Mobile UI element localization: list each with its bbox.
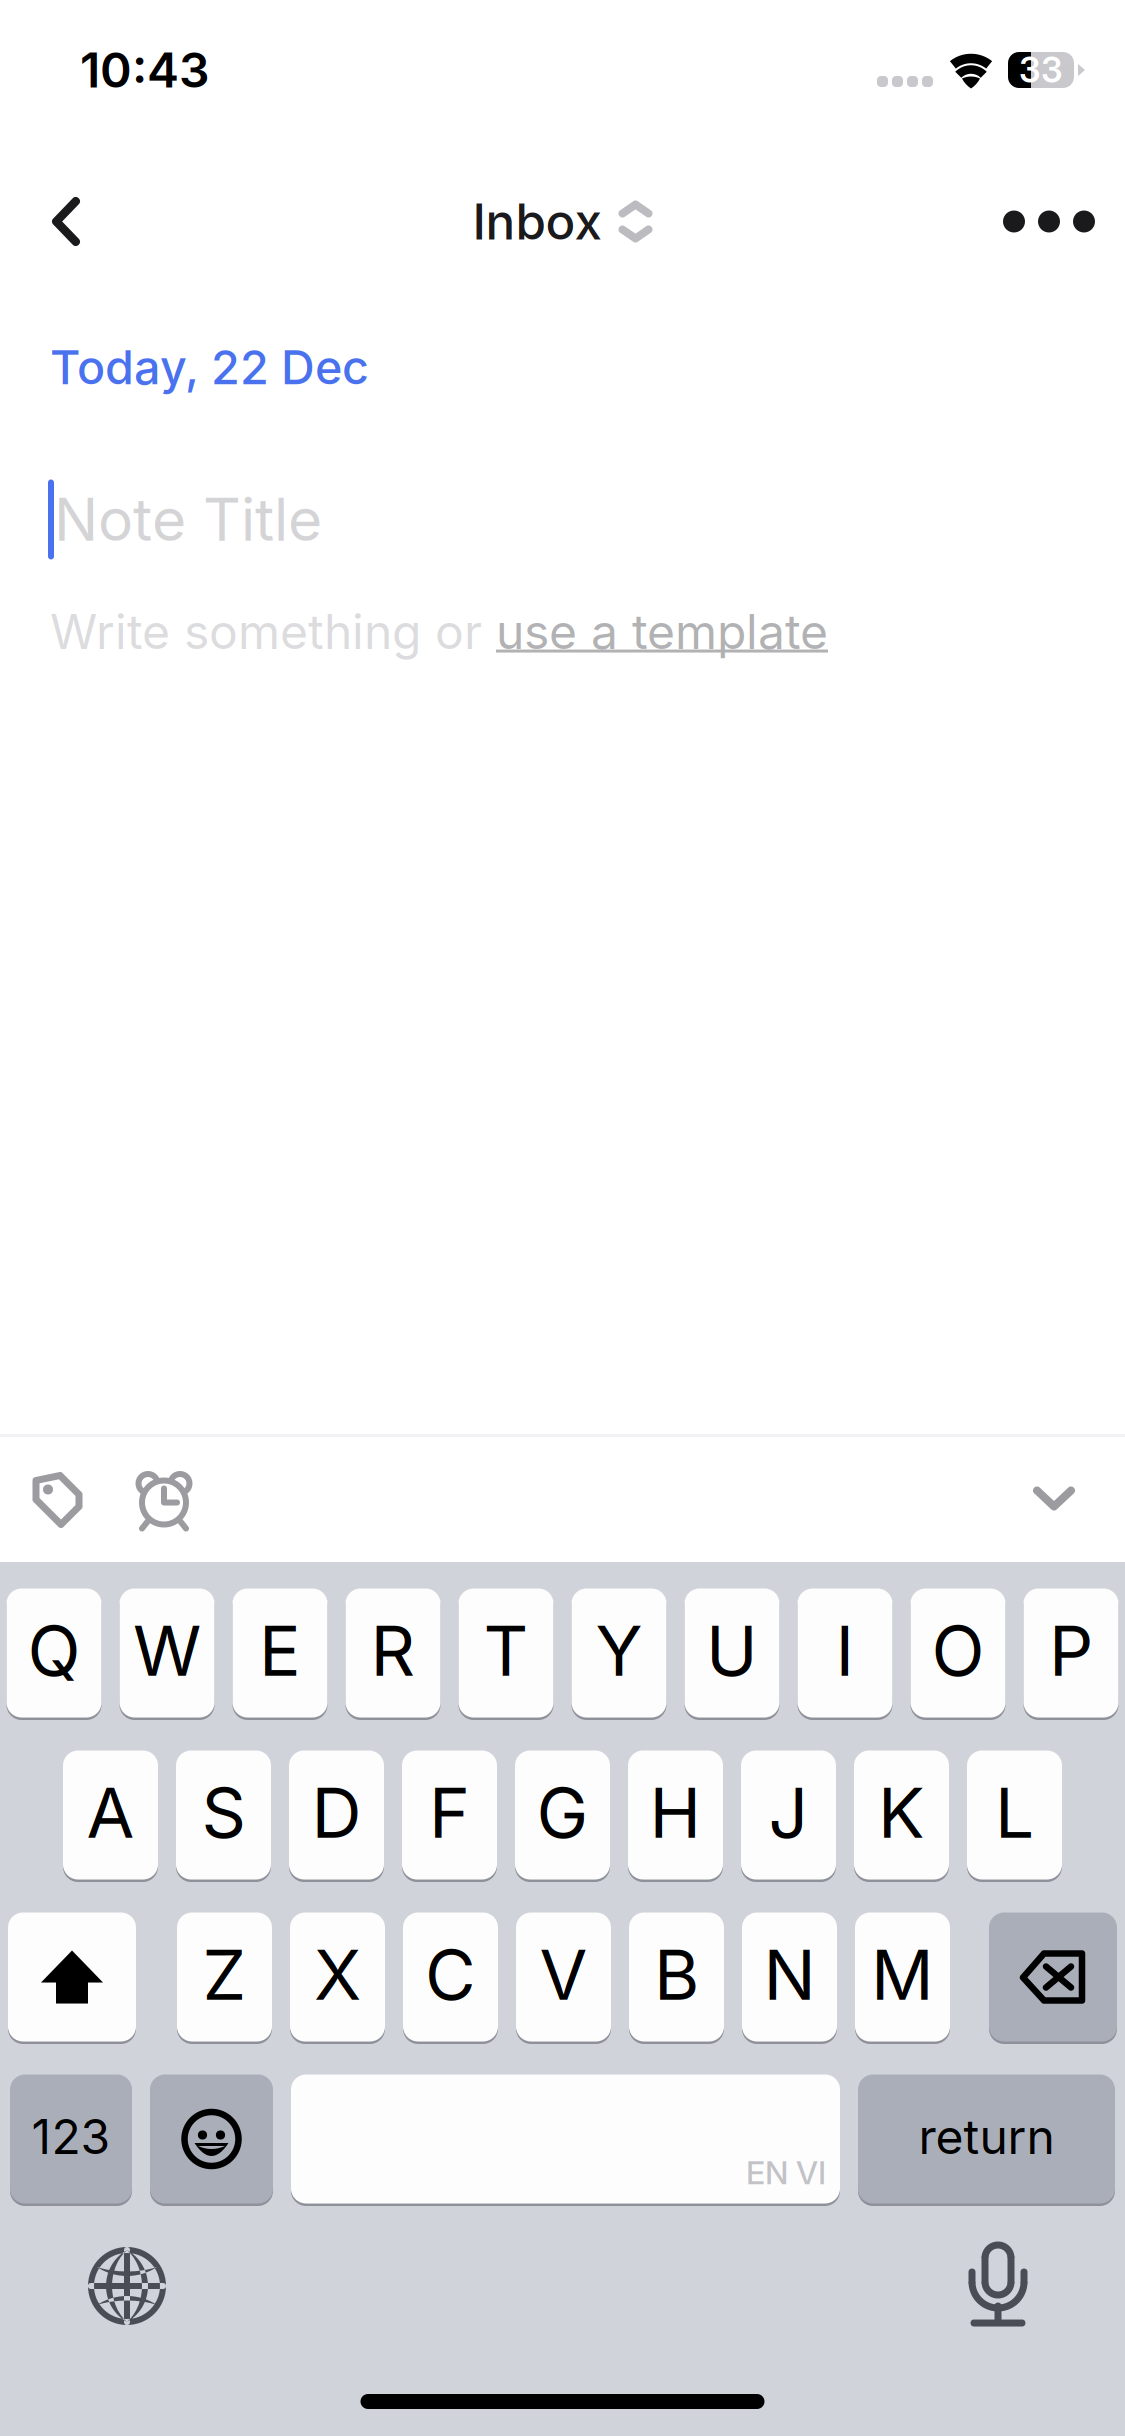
staticText: Note Title [54,484,322,555]
button[interactable]: K [854,1748,949,1882]
button[interactable]: Tags [2,1437,110,1562]
staticText: G [536,1771,588,1854]
staticText: 33 [1019,49,1063,91]
button[interactable]: Space [291,2072,840,2206]
button[interactable]: F [402,1748,497,1882]
button[interactable]: Today, 22 Dec [0,331,419,403]
button[interactable]: 123 [10,2072,132,2206]
button[interactable]: O [910,1586,1005,1720]
staticText: R [370,1609,415,1692]
staticText: 10:43 [80,41,210,99]
staticText: H [649,1771,701,1854]
staticText: L [995,1771,1034,1854]
staticText: EN VI [746,2153,826,2192]
staticText: D [311,1771,361,1854]
staticText: Q [27,1609,80,1692]
button[interactable]: Y [571,1586,666,1720]
staticText: K [878,1771,925,1854]
staticText: N [763,1933,815,2016]
staticText: Z [202,1933,246,2016]
staticText: Write something or [50,602,496,661]
button[interactable]: T [458,1586,553,1720]
button[interactable]: Change keyboard [52,2231,202,2341]
button[interactable]: Shift [8,1910,136,2044]
staticText: V [539,1933,587,2016]
staticText: E [259,1609,301,1692]
staticText: Today, 22 Dec [50,339,369,395]
staticText: W [133,1609,201,1692]
button[interactable]: A [63,1748,158,1882]
staticText: Y [595,1609,642,1692]
staticText: T [483,1609,528,1692]
staticText: X [314,1933,361,2016]
button[interactable]: D [289,1748,384,1882]
staticText: M [871,1933,934,2016]
button[interactable]: L [967,1748,1062,1882]
button[interactable]: C [403,1910,498,2044]
button[interactable]: M [855,1910,950,2044]
button[interactable]: N [742,1910,837,2044]
button[interactable]: Back [0,166,152,276]
staticText: P [1049,1609,1093,1692]
button[interactable]: Z [177,1910,272,2044]
staticText: Inbox [472,192,601,251]
button[interactable]: Delete [989,1910,1117,2044]
button[interactable]: Hide keyboard [999,1437,1109,1562]
button[interactable]: U [684,1586,779,1720]
staticText: F [429,1771,470,1854]
staticText: use a template [496,602,828,661]
button[interactable]: H [628,1748,723,1882]
staticText: A [86,1771,134,1854]
button[interactable]: P [1023,1586,1118,1720]
button[interactable]: Q [6,1586,101,1720]
staticText: J [768,1771,808,1854]
button[interactable]: X [290,1910,385,2044]
staticText: S [201,1771,245,1854]
staticText: U [706,1609,758,1692]
button[interactable]: Dictate [923,2231,1073,2341]
button[interactable]: E [232,1586,327,1720]
button[interactable]: W [119,1586,214,1720]
button[interactable]: Emoji [150,2072,273,2206]
button[interactable]: V [516,1910,611,2044]
button[interactable]: S [176,1748,271,1882]
button[interactable]: Write something or [0,602,828,661]
button[interactable]: return [858,2072,1115,2206]
staticText: O [931,1609,984,1692]
button[interactable]: Reminder [110,1437,218,1562]
button[interactable]: R [345,1586,440,1720]
button[interactable]: I [797,1586,892,1720]
button[interactable]: Inbox [452,166,672,276]
staticText: I [835,1609,854,1692]
button[interactable]: B [629,1910,724,2044]
staticText: C [425,1933,476,2016]
staticText: 123 [31,2107,110,2166]
staticText: B [654,1933,699,2016]
button[interactable]: J [741,1748,836,1882]
staticText: return [918,2107,1054,2166]
button[interactable]: G [515,1748,610,1882]
button[interactable]: More options [965,166,1125,276]
